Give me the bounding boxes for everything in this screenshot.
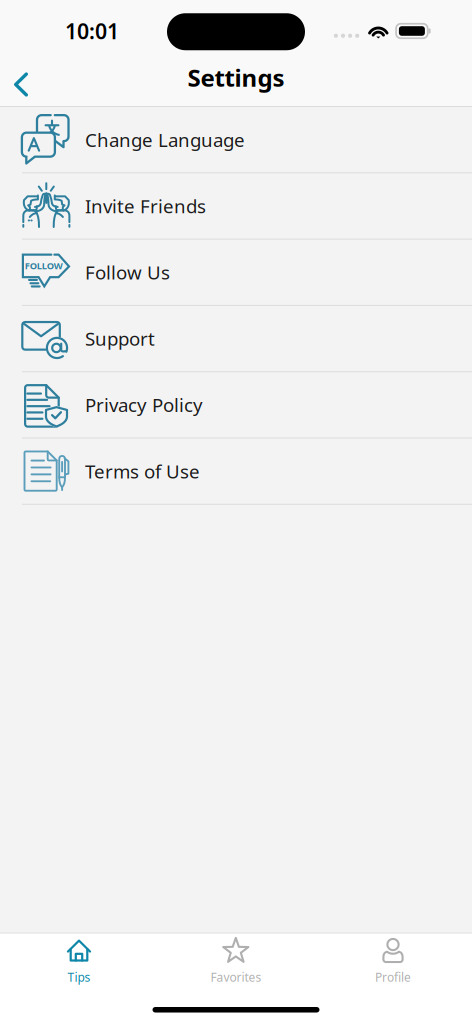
staticText: Change Language: [85, 127, 245, 152]
staticText: Terms of Use: [85, 459, 200, 484]
staticText: Tips: [67, 969, 90, 985]
staticText: Privacy Policy: [85, 392, 203, 417]
button[interactable]: Favorites: [157, 933, 314, 988]
button[interactable]: Invite Friends: [0, 173, 472, 240]
staticText: Profile: [375, 969, 411, 985]
staticText: Support: [85, 326, 155, 351]
staticText: Invite Friends: [85, 194, 206, 218]
button[interactable]: Support: [0, 306, 472, 372]
staticText: Favorites: [210, 969, 261, 985]
button[interactable]: Privacy Policy: [0, 372, 472, 438]
staticText: Follow Us: [85, 260, 170, 285]
button[interactable]: FOLLOW: [0, 240, 472, 306]
staticText: FOLLOW: [25, 259, 63, 272]
button[interactable]: Terms of Use: [0, 438, 472, 505]
staticText: 10:01: [65, 17, 119, 45]
button[interactable]: Back: [0, 55, 42, 106]
button[interactable]: Change Language: [0, 107, 472, 173]
button[interactable]: Profile: [314, 933, 471, 988]
button[interactable]: Tips: [0, 933, 157, 988]
staticText: Settings: [187, 62, 284, 93]
